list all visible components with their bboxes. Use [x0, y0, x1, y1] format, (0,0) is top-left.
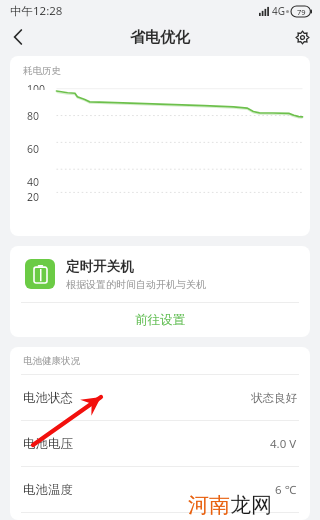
staticText: 耗电历史 — [23, 65, 61, 77]
staticText: 4.0 V — [270, 436, 297, 452]
staticText: 4G — [272, 4, 285, 18]
staticText: 60 — [26, 142, 39, 156]
staticText: 80 — [26, 109, 39, 123]
staticText: 省电优化 — [130, 28, 190, 47]
button[interactable]: 电池电压 — [10, 421, 310, 466]
staticText: 电池电压 — [23, 436, 73, 452]
staticText: 根据设置的时间自动开机与关机 — [66, 278, 206, 291]
button[interactable]: 定时开关机 — [10, 246, 310, 302]
staticText: 20 — [26, 190, 39, 204]
staticText: 河南 — [188, 492, 230, 518]
button[interactable]: 电池状态 — [10, 375, 310, 420]
staticText: 100 — [26, 82, 45, 90]
staticText: 电池状态 — [23, 390, 73, 406]
staticText: 龙网 — [230, 492, 272, 518]
staticText: 前往设置 — [135, 312, 185, 328]
staticText: 定时开关机 — [66, 258, 134, 275]
button[interactable]: Settings — [284, 22, 320, 52]
staticText: 状态良好 — [251, 391, 297, 405]
staticText: 电池温度 — [23, 482, 73, 498]
staticText: 40 — [26, 175, 39, 189]
staticText: 6 ℃ — [275, 482, 297, 498]
button[interactable]: 前往设置 — [10, 303, 310, 337]
staticText: 中午12:28 — [10, 3, 63, 19]
staticText: 79 — [297, 7, 306, 17]
button[interactable]: Back — [0, 22, 36, 52]
staticText: 电池健康状况 — [23, 355, 80, 367]
button[interactable]: 电池温度 — [10, 467, 310, 512]
